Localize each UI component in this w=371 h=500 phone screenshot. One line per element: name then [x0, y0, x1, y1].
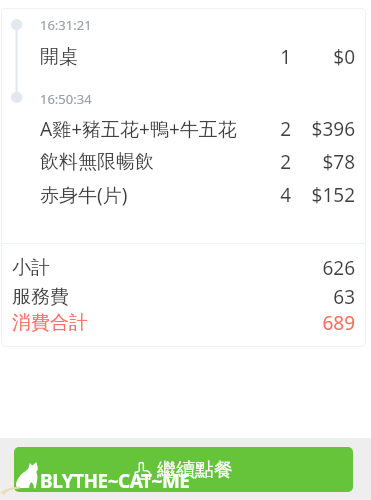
staticText: 服務費 [12, 285, 333, 309]
staticText: $78 [291, 149, 355, 175]
staticText: 16:31:21 [40, 16, 92, 34]
staticText: 繼續點餐 [157, 458, 233, 482]
staticText: $396 [291, 116, 355, 142]
button[interactable]: 開桌 [1, 43, 366, 70]
button[interactable]: 赤身牛(片) [1, 181, 366, 208]
button[interactable]: Continue ordering [14, 447, 353, 492]
staticText: 赤身牛(片) [40, 182, 245, 208]
staticText: 開桌 [40, 45, 245, 69]
staticText: 626 [322, 255, 355, 281]
staticText: $152 [291, 182, 355, 208]
staticText: 飲料無限暢飲 [40, 150, 245, 174]
staticText: 63 [333, 284, 355, 310]
staticText: $0 [291, 44, 355, 70]
staticText: 2 [245, 149, 291, 175]
staticText: 4 [245, 182, 291, 208]
staticText: 小計 [12, 256, 322, 280]
staticText: 消費合計 [12, 311, 322, 335]
other: Continue ordering [134, 462, 151, 479]
button[interactable]: 飲料無限暢飲 [1, 148, 366, 175]
staticText: 689 [322, 310, 355, 336]
staticText: BLYTHE~CAT~ME [40, 468, 190, 494]
staticText: 2 [245, 116, 291, 142]
button[interactable]: 消費合計 [1, 310, 366, 336]
staticText: 16:50:34 [40, 90, 92, 108]
staticText: 1 [245, 44, 291, 70]
button[interactable]: A雞+豬五花+鴨+牛五花 [1, 115, 366, 142]
staticText: A雞+豬五花+鴨+牛五花 [40, 116, 245, 142]
button[interactable]: 服務費 [1, 284, 366, 310]
button[interactable]: 小計 [1, 255, 366, 281]
